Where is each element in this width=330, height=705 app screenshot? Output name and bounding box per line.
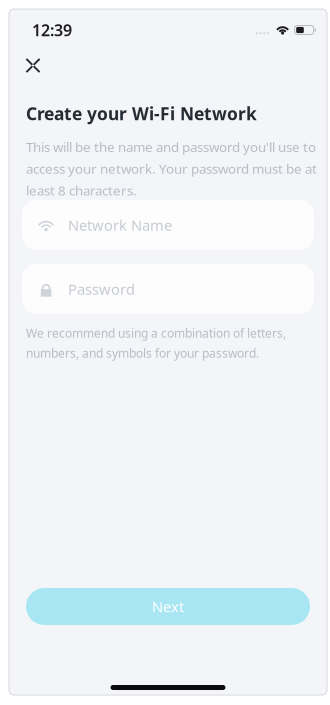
button[interactable]: Next bbox=[26, 588, 310, 625]
staticText: Next bbox=[152, 597, 184, 616]
button[interactable]: Password bbox=[22, 264, 314, 314]
button[interactable]: Close bbox=[14, 51, 52, 80]
staticText: access your network. Your password must … bbox=[26, 160, 317, 177]
button[interactable]: Network Name bbox=[22, 200, 314, 250]
staticText: Password bbox=[68, 279, 135, 299]
staticText: Create your Wi-Fi Network bbox=[26, 102, 257, 125]
staticText: Network Name bbox=[68, 215, 172, 235]
staticText: We recommend using a combination of lett… bbox=[26, 325, 286, 341]
staticText: 12:39 bbox=[32, 19, 72, 41]
staticText: numbers, and symbols for your password. bbox=[26, 345, 259, 361]
staticText: least 8 characters. bbox=[26, 181, 137, 199]
staticText: This will be the name and password you'l… bbox=[26, 138, 316, 156]
